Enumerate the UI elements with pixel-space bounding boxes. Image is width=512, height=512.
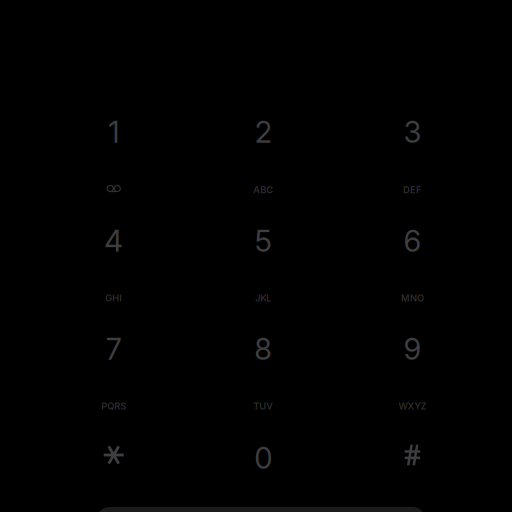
staticText: 0 [254, 440, 272, 476]
staticText: 8 [254, 331, 272, 367]
button[interactable]: 4 [58, 217, 170, 321]
button[interactable]: 6 [356, 217, 468, 321]
staticText: 7 [106, 331, 122, 367]
button[interactable]: 5 [207, 217, 319, 321]
staticText: PQRS [101, 401, 126, 412]
staticText: DEF [403, 184, 422, 195]
button[interactable]: 7 [58, 326, 170, 430]
button[interactable]: Call [96, 507, 425, 512]
staticText: ABC [253, 184, 273, 195]
button[interactable]: 8 [207, 326, 319, 430]
button[interactable]: 1 voicemail [58, 109, 170, 213]
staticText: TUV [253, 401, 273, 412]
staticText: JKL [255, 292, 271, 304]
button[interactable]: 0 [207, 406, 319, 510]
staticText: MNO [401, 292, 424, 304]
staticText: GHI [105, 292, 122, 304]
staticText: 5 [255, 223, 272, 259]
button[interactable]: 2 [207, 109, 319, 213]
staticText: WXYZ [398, 401, 426, 412]
staticText: 9 [403, 331, 421, 367]
staticText: 6 [403, 223, 421, 259]
staticText: 4 [104, 223, 123, 259]
staticText: 3 [403, 114, 421, 150]
button[interactable]: * [58, 406, 170, 510]
staticText: 2 [255, 114, 272, 150]
button[interactable]: 3 [356, 109, 468, 213]
button[interactable]: # [356, 406, 468, 510]
staticText: 1 [108, 114, 119, 150]
button[interactable]: 9 [356, 326, 468, 430]
